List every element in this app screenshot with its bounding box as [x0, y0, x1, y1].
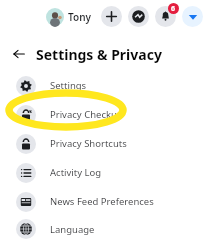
staticText: Settings [50, 79, 87, 92]
button[interactable]: Messenger [128, 6, 149, 27]
button[interactable]: Account menu [182, 6, 203, 27]
staticText: Settings & Privacy [36, 45, 162, 64]
button[interactable]: Back [0, 42, 208, 66]
button[interactable]: Notifications [155, 6, 176, 27]
button[interactable]: Language [0, 216, 208, 242]
button[interactable]: News Feed Preferences [0, 187, 208, 216]
staticText: Privacy Shortcuts [50, 137, 127, 150]
button[interactable]: Privacy Shortcuts [0, 129, 208, 158]
staticText: Privacy Checkup [50, 108, 123, 121]
staticText: Activity Log [50, 166, 102, 179]
other: Back [13, 48, 25, 60]
staticText: 6 [171, 4, 176, 14]
button[interactable]: Tony [44, 6, 94, 28]
staticText: Language [50, 223, 95, 236]
button[interactable]: Create [101, 6, 122, 27]
staticText: News Feed Preferences [50, 195, 154, 208]
button[interactable]: Activity Log [0, 158, 208, 187]
staticText: Tony [68, 10, 92, 24]
button[interactable]: Settings [0, 71, 208, 100]
button[interactable]: Privacy Checkup [0, 100, 208, 129]
